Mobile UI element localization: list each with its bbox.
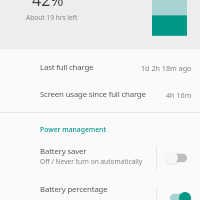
button[interactable]: Switch on	[166, 190, 190, 200]
staticText: 42%	[32, 0, 64, 11]
staticText: Screen usage since full charge	[40, 89, 146, 100]
staticText: Power management	[40, 125, 106, 134]
staticText: 1d 2h 18m ago	[141, 63, 192, 73]
staticText: Battery saver	[40, 146, 87, 157]
staticText: Off / Never turn on automatically	[40, 157, 143, 166]
button[interactable]: Last full charge	[0, 49, 200, 73]
staticText: 4h 16m	[166, 90, 192, 100]
button[interactable]: Screen usage since full charge	[0, 73, 200, 100]
button[interactable]: Battery percentage	[0, 179, 200, 200]
staticText: About 19 hrs left	[26, 13, 78, 22]
button[interactable]: Switch off	[166, 150, 190, 166]
staticText: Battery percentage	[40, 184, 108, 195]
button[interactable]: Battery saver	[0, 144, 200, 168]
staticText: Last full charge	[40, 62, 94, 73]
